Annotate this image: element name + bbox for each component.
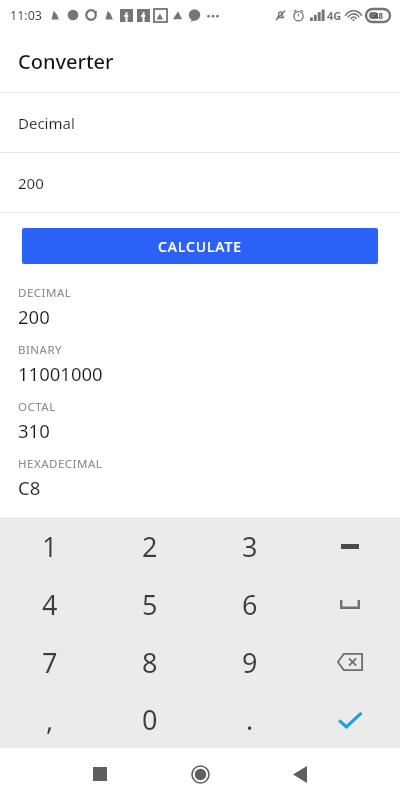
button[interactable]: 6 — [200, 575, 300, 633]
staticText: 2 — [142, 528, 158, 565]
staticText: 4 — [42, 586, 58, 623]
staticText: 310 — [18, 418, 50, 443]
button[interactable]: Done — [300, 691, 400, 748]
staticText: 11:03 — [10, 7, 42, 24]
staticText: 200 — [18, 173, 44, 193]
staticText: 1 — [42, 528, 58, 565]
staticText: 3 — [242, 528, 258, 565]
button[interactable]: Minus — [300, 517, 400, 575]
staticText: Converter — [18, 48, 114, 75]
button[interactable]: 9 — [200, 633, 300, 691]
button[interactable]: 0 — [100, 691, 200, 748]
staticText: 8 — [142, 644, 158, 681]
staticText: DECIMAL — [18, 285, 72, 301]
button[interactable]: , — [0, 691, 100, 748]
staticText: , — [46, 701, 54, 738]
button[interactable]: 4 — [0, 575, 100, 633]
button[interactable]: Decimal — [0, 93, 400, 152]
button[interactable]: 7 — [0, 633, 100, 691]
button[interactable]: . — [200, 691, 300, 748]
staticText: 9 — [242, 644, 258, 681]
staticText: . — [246, 701, 254, 738]
button[interactable]: 8 — [100, 633, 200, 691]
button[interactable]: Recents — [50, 748, 150, 800]
staticText: 200 — [18, 304, 50, 329]
staticText: 6 — [242, 586, 258, 623]
staticText: 7 — [42, 644, 58, 681]
button[interactable]: 1 — [0, 517, 100, 575]
button[interactable]: 2 — [100, 517, 200, 575]
button[interactable]: Space — [300, 575, 400, 633]
staticText: Decimal — [18, 113, 75, 133]
staticText: 48 — [374, 10, 384, 21]
staticText: C8 — [18, 475, 41, 500]
button[interactable]: 5 — [100, 575, 200, 633]
button[interactable]: 3 — [200, 517, 300, 575]
staticText: 11001000 — [18, 361, 103, 386]
staticText: HEXADECIMAL — [18, 456, 103, 472]
button[interactable]: CALCULATE — [22, 228, 378, 264]
button[interactable]: Backspace — [300, 633, 400, 691]
staticText: OCTAL — [18, 399, 56, 415]
staticText: CALCULATE — [158, 237, 242, 256]
button[interactable]: Back — [250, 748, 350, 800]
button[interactable]: Home — [150, 748, 250, 800]
staticText: BINARY — [18, 342, 63, 358]
staticText: 5 — [142, 586, 158, 623]
button[interactable]: 200 — [0, 153, 400, 212]
staticText: 0 — [142, 701, 158, 738]
staticText: 4G — [327, 8, 342, 23]
